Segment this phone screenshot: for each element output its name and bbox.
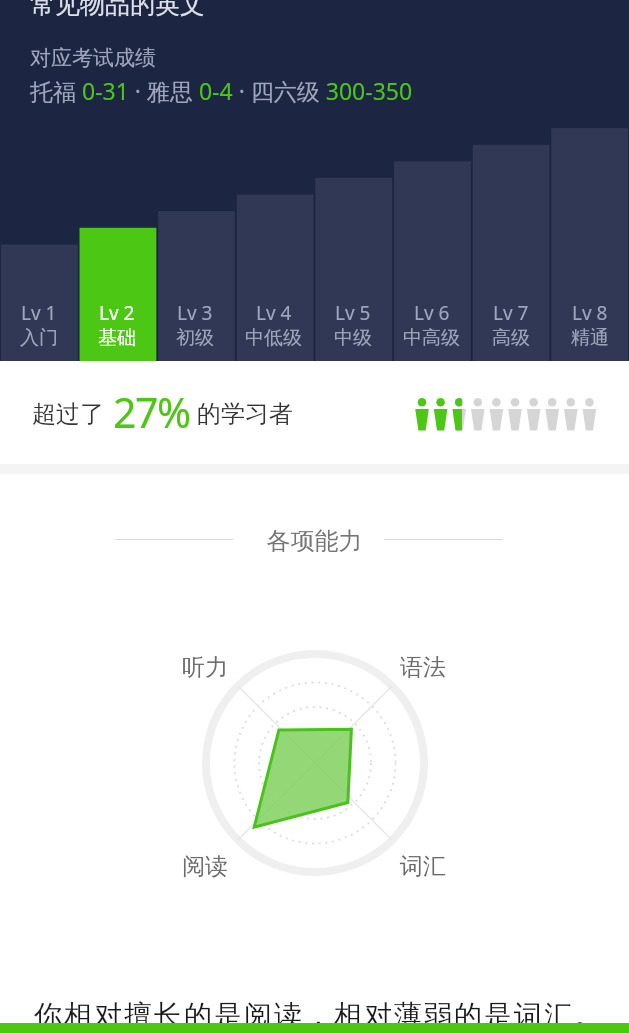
staticText: 中级 [334, 326, 372, 350]
staticText: 高级 [492, 326, 530, 350]
staticText: Lv 2 [99, 300, 135, 326]
staticText: Lv 7 [493, 300, 529, 326]
button[interactable]: Lv 8 [550, 300, 629, 350]
staticText: 中高级 [403, 326, 460, 350]
staticText: 的学习者 [197, 399, 293, 429]
staticText: 对应考试成绩 [30, 45, 156, 71]
staticText: Lv 8 [572, 300, 608, 326]
staticText: 托福 0-31 · 雅思 0-4 · 四六级 300-350 [30, 75, 413, 106]
other: Learner percentile 27 percent [412, 395, 602, 435]
button[interactable]: Lv 5 [313, 300, 392, 350]
staticText: 词汇 [400, 852, 446, 881]
staticText: 阅读 [182, 852, 228, 881]
staticText: 听力 [182, 653, 228, 682]
staticText: Lv 1 [21, 300, 57, 326]
staticText: 中低级 [245, 326, 302, 350]
staticText: 语法 [400, 653, 446, 682]
staticText: 入门 [20, 326, 58, 350]
staticText: Lv 5 [335, 300, 371, 326]
button[interactable]: Lv 7 [471, 300, 550, 350]
button[interactable]: Lv 4 [234, 300, 313, 350]
staticText: Lv 6 [414, 300, 450, 326]
staticText: 各项能力 [0, 526, 629, 552]
button[interactable]: Lv 3 [156, 300, 234, 350]
staticText: 初级 [176, 326, 214, 350]
staticText: 精通 [571, 326, 609, 350]
button[interactable]: Lv 1 [0, 300, 78, 350]
button[interactable]: Lv 2 [78, 300, 156, 350]
staticText: Lv 4 [256, 300, 292, 326]
staticText: 你相对擅长的是阅读，相对薄弱的是词汇。 [33, 998, 603, 1033]
staticText: 超过了 [32, 399, 104, 429]
staticText: 常见物品的英文 [30, 0, 205, 20]
staticText: 基础 [98, 326, 136, 350]
staticText: Lv 3 [177, 300, 213, 326]
button[interactable]: Lv 6 [392, 300, 471, 350]
staticText: 27% [113, 384, 190, 440]
